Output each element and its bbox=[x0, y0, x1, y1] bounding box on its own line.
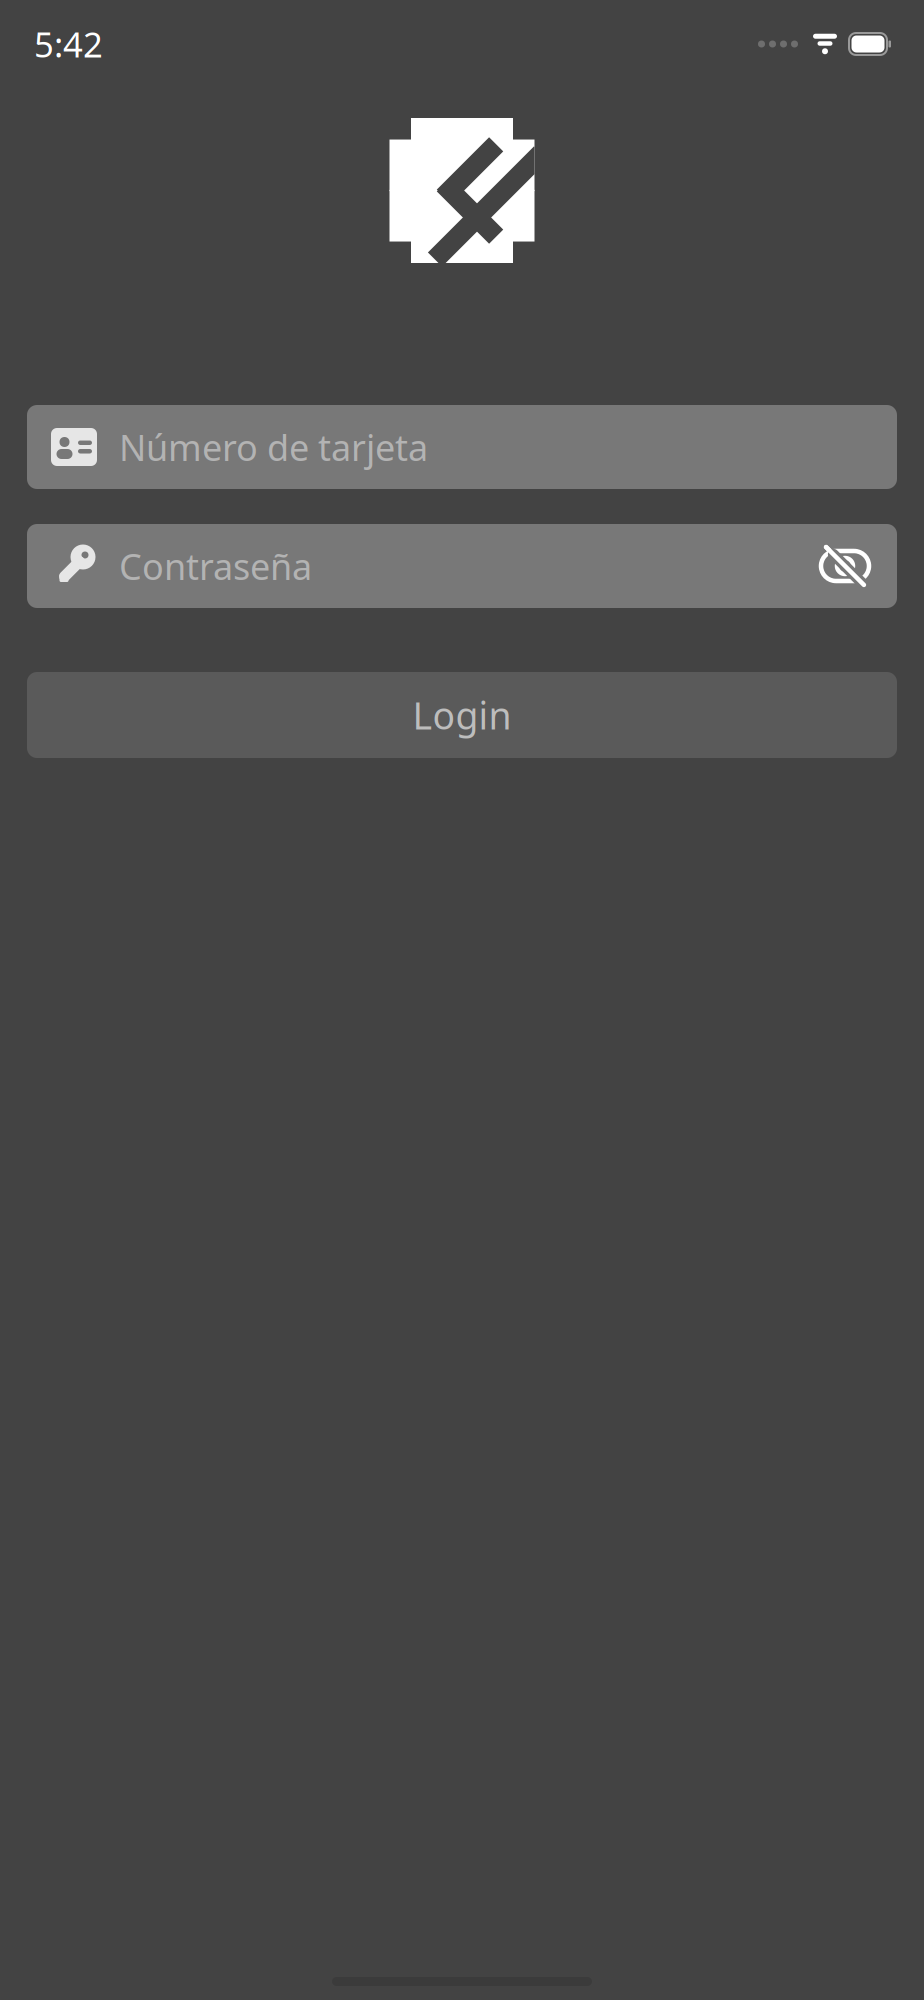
button[interactable]: Login bbox=[27, 672, 897, 758]
staticText: Contraseña bbox=[119, 542, 312, 590]
staticText: Login bbox=[412, 690, 511, 740]
staticText: 5:42 bbox=[34, 21, 103, 67]
button[interactable]: Número de tarjeta bbox=[27, 405, 897, 489]
button[interactable]: Contraseña bbox=[27, 524, 897, 608]
staticText: Número de tarjeta bbox=[119, 423, 428, 471]
